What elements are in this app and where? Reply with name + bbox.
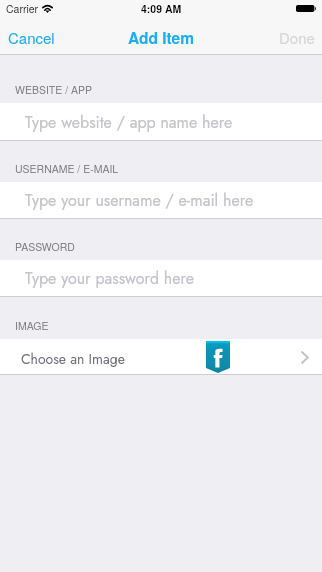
staticText: Type your username / e-mail here	[25, 189, 254, 212]
staticText: Choose an Image	[21, 349, 125, 369]
staticText: WEBSITE / APP	[15, 82, 93, 97]
other: Choose an Image	[302, 352, 308, 363]
staticText: Type your password here	[25, 267, 194, 290]
staticText: Add Item	[128, 27, 194, 49]
button[interactable]: Type website / app name here	[0, 103, 322, 141]
button[interactable]: Type your username / e-mail here	[0, 182, 322, 219]
staticText: Type website / app name here	[25, 111, 233, 134]
staticText: 4:09 AM	[141, 1, 182, 16]
button[interactable]: Choose an Image	[0, 339, 322, 375]
staticText: Cancel	[8, 27, 55, 48]
staticText: Carrier	[6, 1, 39, 16]
button[interactable]: Done	[269, 21, 322, 54]
staticText: Done	[279, 27, 315, 48]
staticText: USERNAME / E-MAIL	[15, 161, 119, 176]
button[interactable]: Type your password here	[0, 260, 322, 297]
staticText: IMAGE	[15, 318, 49, 333]
staticText: PASSWORD	[15, 239, 75, 254]
button[interactable]: Cancel	[0, 21, 65, 54]
